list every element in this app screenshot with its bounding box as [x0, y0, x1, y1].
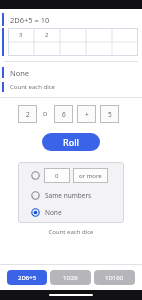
staticText: 6	[62, 110, 66, 119]
staticText: None	[45, 208, 62, 217]
staticText: 0	[55, 172, 59, 180]
staticText: or more	[79, 172, 102, 180]
button[interactable]: 2D6+5	[7, 270, 47, 285]
staticText: Same numbers	[45, 191, 92, 200]
button[interactable]: 5	[100, 105, 119, 123]
staticText: 2	[45, 31, 49, 39]
staticText: None	[10, 68, 30, 78]
other: Option	[31, 171, 40, 180]
staticText: 1D100	[105, 274, 124, 282]
button[interactable]: +	[77, 105, 96, 123]
button[interactable]: Option	[18, 167, 124, 184]
button[interactable]: Option	[18, 190, 124, 201]
staticText: +	[85, 110, 89, 119]
button[interactable]: Roll	[42, 133, 100, 151]
staticText: 3	[19, 31, 23, 39]
staticText: Count each dice	[10, 83, 55, 91]
button[interactable]: 1D100	[94, 270, 135, 285]
button[interactable]: 1D20	[50, 270, 91, 285]
staticText: 2D6+5	[18, 274, 37, 282]
staticText: 2	[26, 110, 30, 119]
button[interactable]: 0	[44, 168, 70, 183]
button[interactable]: Selected option	[18, 207, 124, 218]
button[interactable]: or more	[73, 168, 108, 183]
staticText: 5	[108, 110, 112, 119]
other: Selected option	[31, 208, 40, 217]
staticText: D	[43, 110, 48, 118]
staticText: 1D20	[63, 274, 78, 282]
staticText: Roll	[63, 136, 80, 148]
staticText: Count each dice	[0, 228, 142, 236]
button[interactable]: 6	[54, 105, 73, 123]
button[interactable]: 2	[18, 105, 37, 123]
staticText: 2D6+5 = 10	[10, 15, 50, 25]
other: Option	[31, 191, 40, 200]
